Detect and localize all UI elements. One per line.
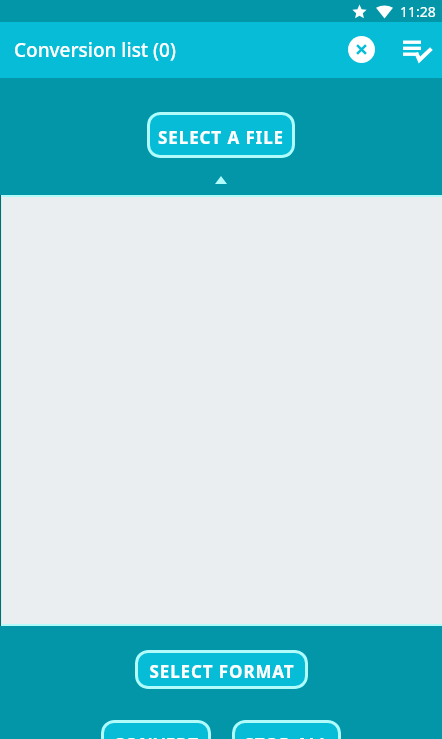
- staticText: STOP ALL: [244, 733, 330, 739]
- button[interactable]: STOP ALL: [232, 720, 341, 739]
- button[interactable]: Select all: [395, 28, 440, 73]
- button[interactable]: SELECT A FILE: [147, 112, 295, 158]
- button[interactable]: SELECT FORMAT: [135, 650, 308, 689]
- staticText: SELECT FORMAT: [149, 660, 295, 683]
- staticText: CONVERT: [113, 733, 199, 739]
- button[interactable]: CONVERT: [101, 720, 211, 739]
- staticText: 11:28: [400, 2, 436, 21]
- button[interactable]: Clear list: [339, 27, 384, 72]
- staticText: Conversion list (0): [14, 37, 176, 63]
- staticText: SELECT A FILE: [158, 126, 284, 149]
